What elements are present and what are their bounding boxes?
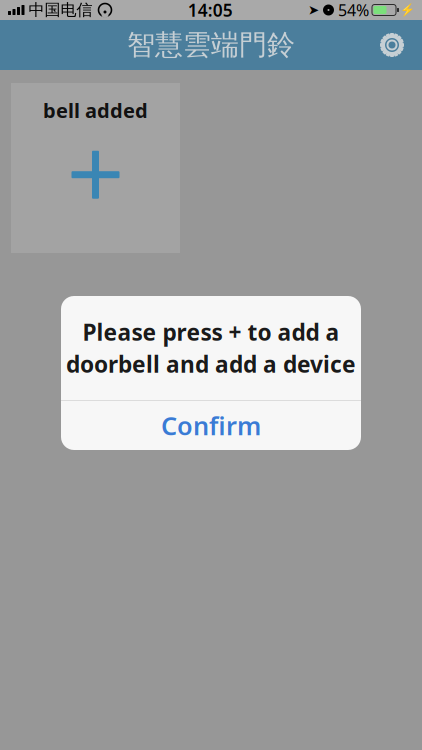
button[interactable]: Settings (378, 31, 422, 59)
button[interactable]: Confirm (61, 401, 361, 450)
staticText: doorbell and add a device (66, 349, 356, 379)
staticText: 智慧雲端門鈴 (127, 28, 295, 62)
staticText: 54% (338, 0, 369, 21)
staticText: Please press + to add a (82, 317, 339, 347)
staticText: 14:05 (188, 0, 233, 21)
staticText: 中国电信 (28, 0, 92, 20)
staticText: Confirm (161, 409, 261, 442)
staticText: bell added (43, 97, 148, 124)
staticText: ⚡ (400, 3, 415, 17)
staticText: ➤ (308, 2, 319, 17)
button[interactable]: bell added (11, 83, 180, 253)
